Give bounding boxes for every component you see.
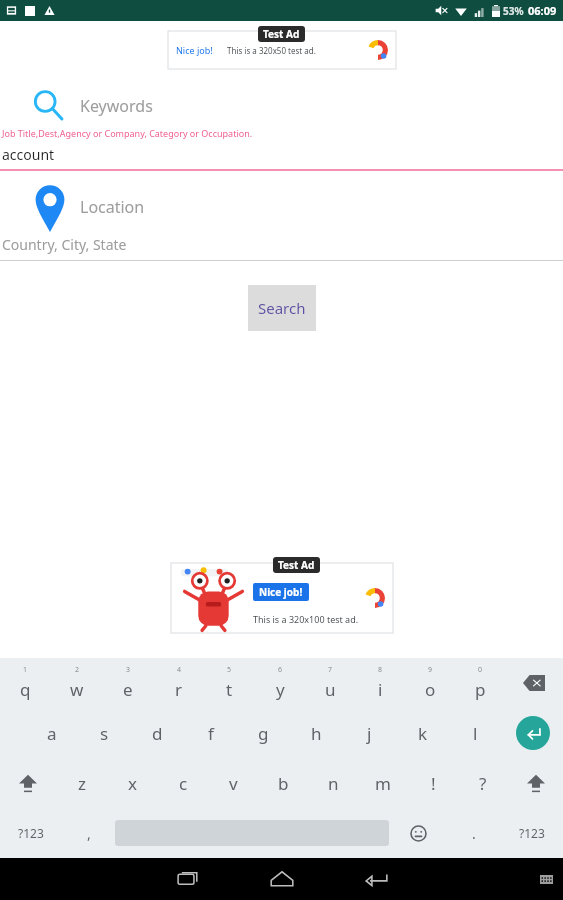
- staticText: 6: [278, 665, 283, 675]
- button[interactable]: Location: [30, 181, 563, 233]
- button[interactable]: 3: [102, 658, 153, 708]
- staticText: t: [226, 678, 233, 701]
- staticText: ?123: [18, 825, 44, 841]
- button[interactable]: b: [258, 758, 308, 808]
- staticText: a: [47, 722, 57, 745]
- button[interactable]: j: [343, 708, 396, 758]
- staticText: Keywords: [80, 95, 153, 117]
- button[interactable]: a: [25, 708, 78, 758]
- staticText: q: [20, 678, 31, 701]
- staticText: w: [70, 678, 84, 701]
- staticText: Nice job!: [176, 44, 213, 56]
- staticText: Job Title,Dest,Agency or Company, Catego…: [2, 127, 253, 139]
- button[interactable]: 8: [355, 658, 405, 708]
- staticText: r: [175, 678, 183, 701]
- button[interactable]: .: [447, 808, 500, 858]
- staticText: v: [229, 772, 238, 795]
- button[interactable]: n: [308, 758, 358, 808]
- staticText: This is a 320x50 test ad.: [227, 45, 316, 56]
- button[interactable]: 1: [0, 658, 51, 708]
- staticText: j: [367, 722, 372, 745]
- staticText: 9: [428, 665, 433, 675]
- button[interactable]: Enter: [502, 708, 563, 758]
- button[interactable]: 9: [405, 658, 455, 708]
- button[interactable]: x: [107, 758, 158, 808]
- staticText: s: [100, 722, 109, 745]
- staticText: h: [311, 722, 322, 745]
- button[interactable]: v: [208, 758, 258, 808]
- button[interactable]: 7: [305, 658, 355, 708]
- button[interactable]: ?123: [500, 808, 563, 858]
- staticText: n: [328, 772, 339, 795]
- button[interactable]: d: [131, 708, 184, 758]
- staticText: 2: [75, 665, 80, 675]
- button[interactable]: l: [449, 708, 502, 758]
- staticText: 06:09: [528, 3, 557, 18]
- button[interactable]: 5: [204, 658, 255, 708]
- button[interactable]: 6: [255, 658, 305, 708]
- staticText: This is a 320x100 test ad.: [253, 613, 359, 625]
- button[interactable]: c: [158, 758, 208, 808]
- staticText: 7: [328, 665, 333, 675]
- staticText: ?: [479, 772, 487, 795]
- button[interactable]: Shift: [0, 758, 56, 808]
- staticText: 4: [177, 665, 182, 675]
- button[interactable]: g: [237, 708, 290, 758]
- button[interactable]: z: [56, 758, 107, 808]
- button[interactable]: Back: [348, 858, 404, 900]
- staticText: 0: [478, 665, 483, 675]
- button[interactable]: Home: [254, 858, 310, 900]
- staticText: x: [128, 772, 137, 795]
- button[interactable]: Search keywords: [30, 87, 563, 125]
- staticText: e: [123, 678, 133, 701]
- button[interactable]: 4: [153, 658, 204, 708]
- staticText: ,: [87, 824, 91, 843]
- staticText: .: [472, 824, 476, 843]
- staticText: 5: [227, 665, 232, 675]
- button[interactable]: 0: [455, 658, 505, 708]
- staticText: Nice job!: [259, 585, 303, 599]
- staticText: u: [325, 678, 336, 701]
- button[interactable]: k: [396, 708, 449, 758]
- staticText: 3: [126, 665, 131, 675]
- staticText: f: [208, 722, 214, 745]
- button[interactable]: !: [408, 758, 458, 808]
- staticText: m: [375, 772, 391, 795]
- staticText: p: [475, 678, 486, 701]
- button[interactable]: h: [290, 708, 343, 758]
- staticText: g: [258, 722, 269, 745]
- staticText: 8: [378, 665, 383, 675]
- button[interactable]: ,: [62, 808, 115, 858]
- button[interactable]: Keyboard indicator: [539, 872, 553, 886]
- staticText: b: [278, 772, 289, 795]
- button[interactable]: Search: [248, 285, 316, 331]
- staticText: Search: [258, 298, 306, 318]
- staticText: y: [276, 678, 285, 701]
- button[interactable]: Backspace: [505, 658, 563, 708]
- staticText: d: [152, 722, 163, 745]
- staticText: i: [378, 678, 383, 701]
- button[interactable]: Nice job!: [171, 563, 393, 633]
- staticText: 53%: [503, 4, 524, 18]
- button[interactable]: s: [78, 708, 131, 758]
- other: Location: [30, 181, 70, 233]
- button[interactable]: Shift: [508, 758, 563, 808]
- staticText: ?123: [519, 825, 545, 841]
- staticText: c: [179, 772, 188, 795]
- button[interactable]: m: [358, 758, 408, 808]
- button[interactable]: Recents: [160, 858, 216, 900]
- button[interactable]: Emoji: [389, 808, 447, 858]
- button[interactable]: ?: [458, 758, 508, 808]
- staticText: z: [78, 772, 86, 795]
- other: Search keywords: [30, 87, 68, 125]
- button[interactable]: f: [184, 708, 237, 758]
- button[interactable]: Nice job!: [168, 31, 396, 69]
- staticText: k: [418, 722, 428, 745]
- staticText: !: [431, 772, 436, 795]
- staticText: account: [2, 145, 55, 164]
- button[interactable]: ?123: [0, 808, 62, 858]
- button[interactable]: 2: [51, 658, 102, 708]
- staticText: o: [425, 678, 436, 701]
- staticText: Test Ad: [278, 558, 315, 572]
